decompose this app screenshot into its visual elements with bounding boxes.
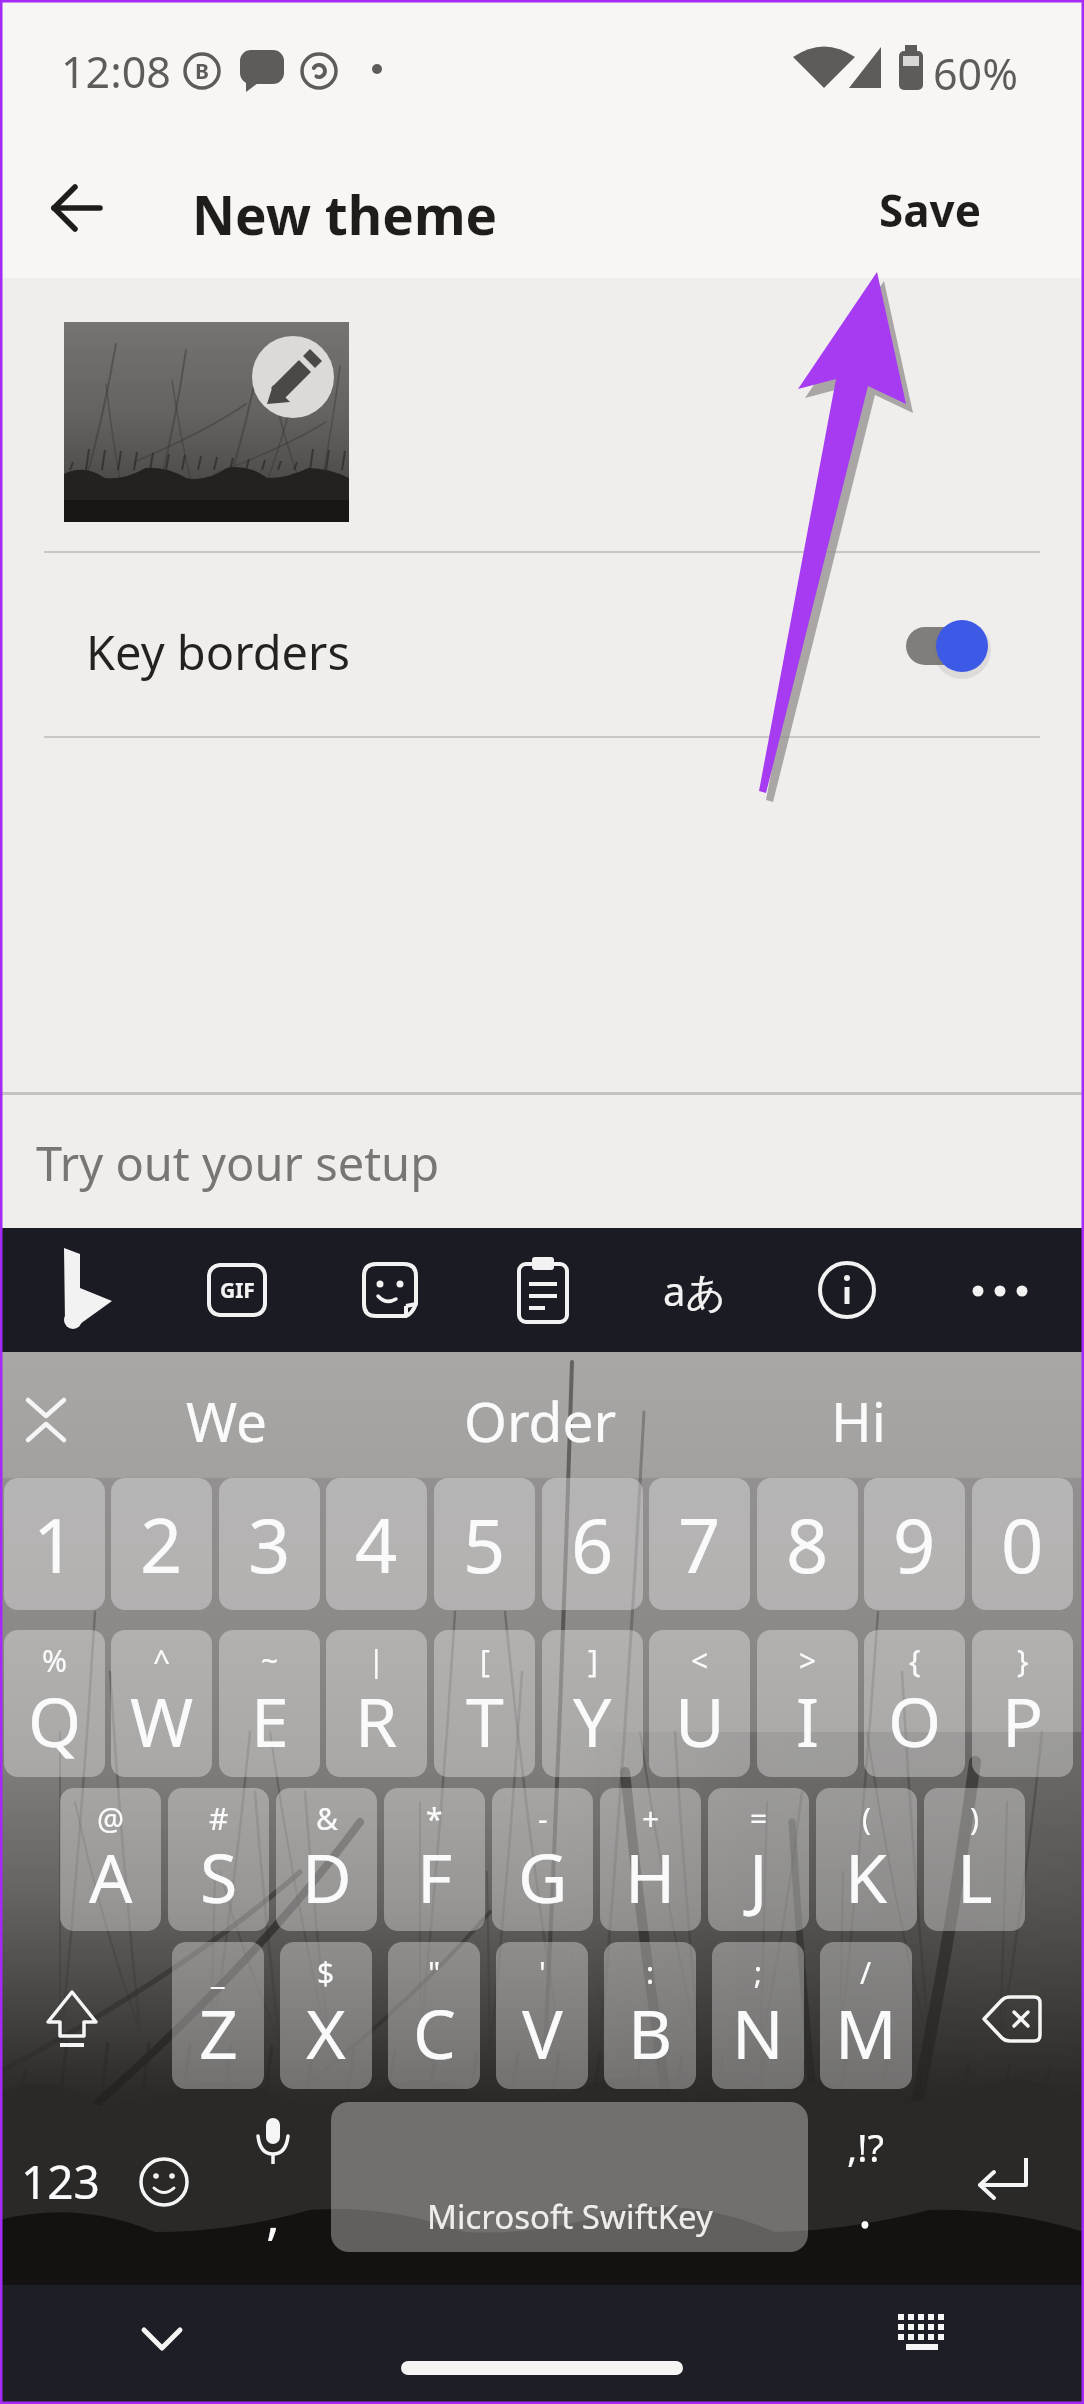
button[interactable] bbox=[24, 1960, 134, 2070]
staticText: < bbox=[691, 1640, 709, 1681]
button[interactable]: # bbox=[168, 1788, 269, 1931]
button[interactable]: @ bbox=[60, 1788, 161, 1931]
button[interactable] bbox=[817, 1260, 877, 1320]
button[interactable]: [ bbox=[434, 1630, 535, 1777]
button[interactable]: Hi bbox=[760, 1382, 956, 1458]
button[interactable]: : bbox=[604, 1942, 696, 2089]
button[interactable]: ^ bbox=[111, 1630, 212, 1777]
button[interactable] bbox=[38, 172, 114, 244]
button[interactable] bbox=[906, 627, 986, 665]
button[interactable]: = bbox=[708, 1788, 809, 1931]
staticText: : bbox=[646, 1952, 655, 1993]
staticText: | bbox=[368, 1640, 385, 1681]
button[interactable] bbox=[517, 1256, 571, 1324]
button[interactable]: + bbox=[600, 1788, 701, 1931]
button[interactable]: $ bbox=[280, 1942, 372, 2089]
button[interactable]: Try out your setup bbox=[0, 1095, 1084, 1228]
button[interactable]: GIF bbox=[207, 1263, 267, 1317]
button[interactable]: < bbox=[649, 1630, 750, 1777]
button[interactable]: 2 bbox=[111, 1478, 212, 1610]
staticText: Y bbox=[573, 1674, 612, 1767]
button[interactable]: 8 bbox=[757, 1478, 858, 1610]
staticText: ~ bbox=[261, 1640, 279, 1681]
button[interactable]: & bbox=[276, 1788, 377, 1931]
button[interactable]: 3 bbox=[219, 1478, 320, 1610]
staticText: = bbox=[750, 1798, 768, 1839]
staticText: L bbox=[957, 1830, 993, 1923]
button[interactable]: _ bbox=[172, 1942, 264, 2089]
button[interactable]: % bbox=[4, 1630, 105, 1777]
staticText: 7 bbox=[678, 1494, 721, 1595]
staticText: ) bbox=[970, 1798, 979, 1839]
button[interactable]: > bbox=[757, 1630, 858, 1777]
staticText: U bbox=[675, 1674, 725, 1767]
button[interactable] bbox=[120, 2138, 208, 2226]
button[interactable] bbox=[362, 1262, 420, 1320]
staticText: 60% bbox=[933, 44, 1018, 94]
button[interactable]: ~ bbox=[219, 1630, 320, 1777]
button[interactable]: 4 bbox=[326, 1478, 427, 1610]
button[interactable] bbox=[960, 1265, 1040, 1315]
button[interactable]: aあ bbox=[645, 1244, 745, 1336]
staticText: Save bbox=[879, 180, 981, 240]
button[interactable]: . bbox=[830, 2172, 900, 2242]
button[interactable] bbox=[64, 322, 349, 522]
button[interactable]: { bbox=[864, 1630, 965, 1777]
button[interactable]: ( bbox=[816, 1788, 917, 1931]
button[interactable]: ,!? bbox=[820, 2118, 910, 2176]
staticText: 5 bbox=[463, 1494, 506, 1595]
staticText: R bbox=[355, 1674, 398, 1767]
staticText: , bbox=[266, 2178, 280, 2248]
button[interactable]: Key borders bbox=[44, 560, 1040, 736]
staticText: ' bbox=[539, 1952, 546, 1993]
button[interactable] bbox=[40, 1236, 130, 1344]
staticText: S bbox=[200, 1830, 238, 1923]
staticText: " bbox=[428, 1952, 441, 1993]
staticText: { bbox=[909, 1640, 921, 1681]
staticText: ^ bbox=[153, 1640, 171, 1681]
button[interactable]: 6 bbox=[542, 1478, 643, 1610]
button[interactable]: Microsoft SwiftKey bbox=[331, 2102, 808, 2252]
button[interactable]: 1 bbox=[4, 1478, 105, 1610]
staticText: 8 bbox=[786, 1494, 829, 1595]
button[interactable]: - bbox=[492, 1788, 593, 1931]
staticText: O bbox=[888, 1674, 942, 1767]
staticText: 123 bbox=[21, 2150, 100, 2210]
button[interactable] bbox=[230, 2108, 316, 2178]
staticText: - bbox=[538, 1798, 548, 1839]
staticText: We bbox=[186, 1383, 268, 1458]
staticText: * bbox=[426, 1798, 443, 1839]
button[interactable]: } bbox=[972, 1630, 1073, 1777]
button[interactable] bbox=[870, 2300, 974, 2390]
button[interactable]: 7 bbox=[649, 1478, 750, 1610]
button[interactable]: " bbox=[388, 1942, 480, 2089]
staticText: H bbox=[625, 1830, 676, 1923]
staticText: M bbox=[835, 1986, 897, 2079]
button[interactable]: / bbox=[820, 1942, 912, 2089]
button[interactable]: * bbox=[384, 1788, 485, 1931]
staticText: F bbox=[417, 1830, 453, 1923]
staticText: Microsoft SwiftKey bbox=[427, 2194, 713, 2239]
button[interactable] bbox=[950, 2130, 1054, 2230]
staticText: K bbox=[845, 1830, 888, 1923]
staticText: > bbox=[799, 1640, 817, 1681]
button[interactable]: | bbox=[326, 1630, 427, 1777]
button[interactable]: 5 bbox=[434, 1478, 535, 1610]
button[interactable]: 0 bbox=[972, 1478, 1073, 1610]
staticText: aあ bbox=[663, 1263, 727, 1318]
button[interactable]: ) bbox=[924, 1788, 1025, 1931]
button[interactable]: 123 bbox=[10, 2150, 110, 2210]
button[interactable] bbox=[110, 2300, 214, 2390]
button[interactable]: Order bbox=[420, 1382, 660, 1458]
staticText: 1 bbox=[33, 1494, 76, 1595]
button[interactable]: Save bbox=[860, 180, 1000, 240]
staticText: _ bbox=[211, 1952, 225, 1993]
button[interactable]: We bbox=[130, 1382, 324, 1458]
staticText: A bbox=[89, 1830, 133, 1923]
button[interactable]: ; bbox=[712, 1942, 804, 2089]
button[interactable] bbox=[960, 1960, 1070, 2070]
button[interactable]: ] bbox=[542, 1630, 643, 1777]
button[interactable]: 9 bbox=[864, 1478, 965, 1610]
button[interactable]: , bbox=[240, 2178, 306, 2248]
button[interactable]: ' bbox=[496, 1942, 588, 2089]
